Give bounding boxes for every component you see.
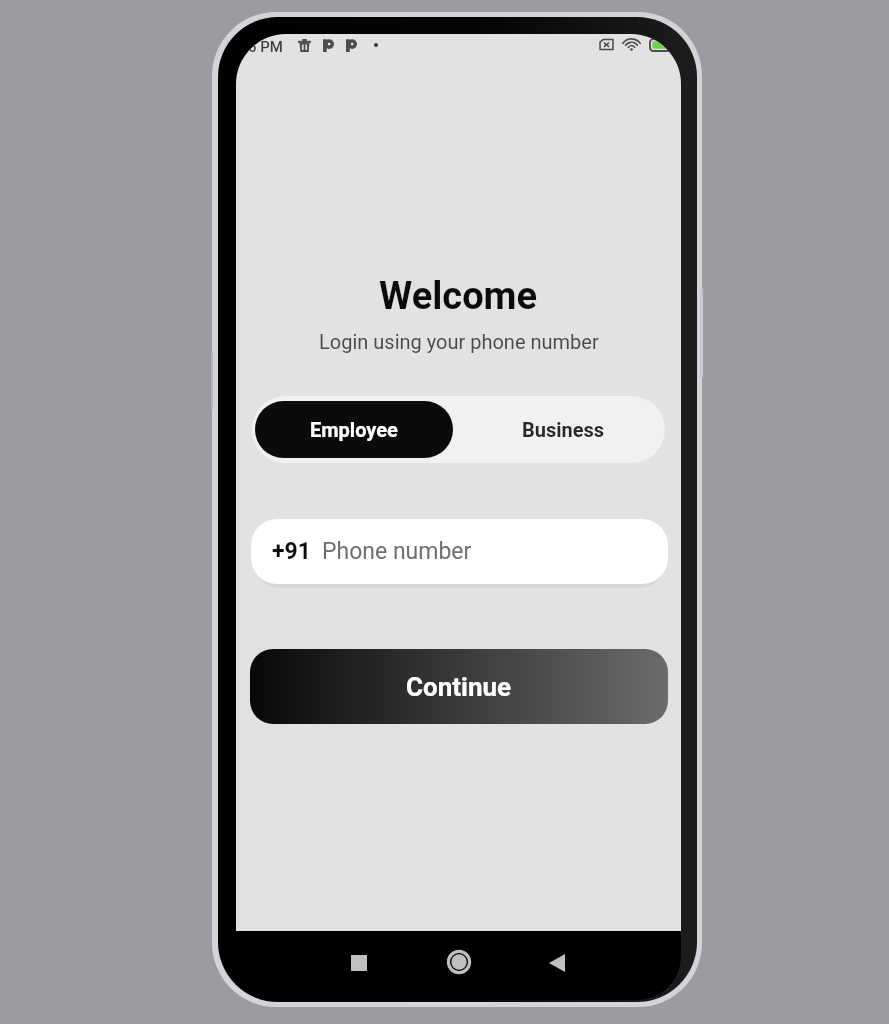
staticText: Login using your phone number bbox=[319, 330, 599, 353]
staticText: Phone number bbox=[322, 538, 472, 565]
staticText: Continue bbox=[406, 672, 512, 702]
staticText: 6 PM bbox=[248, 38, 283, 56]
staticText: Welcome bbox=[379, 274, 538, 319]
button[interactable]: Business bbox=[456, 396, 665, 463]
staticText: Employee bbox=[310, 418, 398, 441]
button[interactable]: Continue bbox=[250, 649, 668, 724]
button[interactable]: Recents bbox=[337, 941, 381, 985]
button[interactable]: Home bbox=[437, 940, 481, 984]
button[interactable]: Employee bbox=[255, 401, 453, 458]
button[interactable]: Back bbox=[535, 941, 579, 985]
staticText: +91 bbox=[272, 538, 311, 565]
staticText: Business bbox=[522, 418, 605, 441]
button[interactable]: +91 bbox=[251, 519, 668, 584]
